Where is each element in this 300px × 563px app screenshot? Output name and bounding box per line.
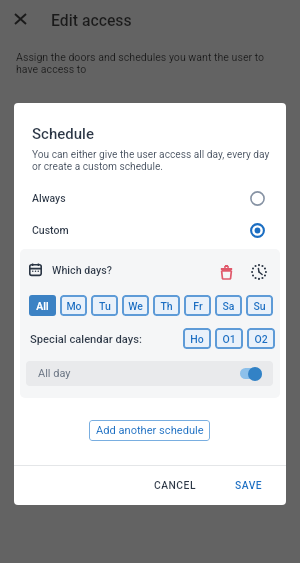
button[interactable]: Th — [153, 295, 180, 316]
button[interactable]: Fr — [184, 295, 211, 316]
button[interactable]: We — [122, 295, 149, 316]
button[interactable]: Custom — [14, 216, 286, 244]
button[interactable]: Always — [14, 184, 286, 212]
button[interactable]: Delete schedule — [216, 262, 236, 282]
button[interactable]: O2 — [247, 328, 275, 349]
staticText: Assign the doors and schedules you want … — [16, 51, 266, 75]
button[interactable]: Mo — [60, 295, 87, 316]
staticText: O2 — [254, 333, 268, 345]
button[interactable]: Close — [9, 7, 32, 30]
button[interactable]: Su — [246, 295, 273, 316]
button[interactable]: Ho — [183, 328, 211, 349]
staticText: Custom — [32, 224, 69, 236]
button[interactable]: All — [29, 295, 56, 316]
staticText: CANCEL — [154, 479, 196, 491]
button[interactable]: O1 — [215, 328, 243, 349]
button[interactable]: Tu — [91, 295, 118, 316]
staticText: Add another schedule — [96, 424, 204, 437]
button[interactable]: Add another schedule — [89, 420, 210, 441]
button[interactable]: Schedule history — [249, 262, 269, 282]
staticText: Always — [32, 192, 66, 204]
button[interactable]: Sa — [215, 295, 242, 316]
staticText: We — [128, 300, 143, 312]
staticText: Fr — [193, 300, 203, 312]
staticText: SAVE — [235, 479, 263, 491]
staticText: Tu — [99, 300, 111, 312]
staticText: All — [36, 300, 49, 312]
staticText: Su — [253, 300, 266, 312]
button[interactable]: SAVE — [227, 473, 271, 497]
button[interactable]: CANCEL — [146, 473, 204, 497]
staticText: Schedule — [32, 125, 94, 143]
staticText: O1 — [222, 333, 236, 345]
staticText: Special calendar days: — [30, 333, 142, 346]
staticText: All day — [38, 367, 71, 380]
button[interactable]: All day — [26, 361, 273, 386]
staticText: Which days? — [52, 264, 112, 277]
staticText: You can either give the user access all … — [32, 149, 274, 173]
staticText: Edit access — [51, 11, 132, 30]
staticText: Th — [160, 300, 173, 312]
staticText: Mo — [66, 300, 82, 312]
staticText: Sa — [222, 300, 235, 312]
staticText: Ho — [190, 333, 204, 345]
